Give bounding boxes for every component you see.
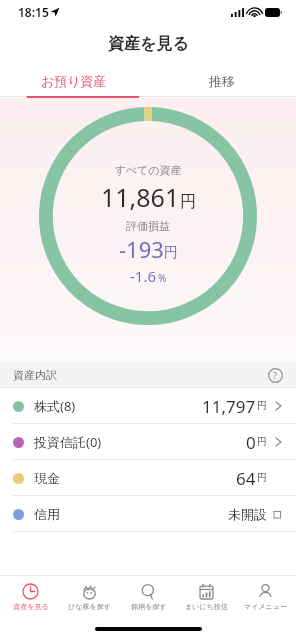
button[interactable]: 資産を見る xyxy=(2,575,59,618)
staticText: 0 xyxy=(246,431,256,454)
staticText: -1.6 xyxy=(130,266,157,286)
staticText: 18:15 xyxy=(18,4,49,20)
staticText: 資産を見る xyxy=(13,602,49,611)
button[interactable]: 信用 xyxy=(0,496,296,532)
staticText: 64 xyxy=(236,467,256,490)
staticText: 未開設 xyxy=(228,506,267,522)
button[interactable]: マイメニュー xyxy=(237,575,294,618)
staticText: -193 xyxy=(119,234,164,264)
staticText: 円 xyxy=(257,435,267,448)
button[interactable]: まいにち投信 xyxy=(178,575,235,618)
button[interactable]: ヘルプ xyxy=(264,364,286,386)
staticText: 円 xyxy=(257,399,267,412)
staticText: 円 xyxy=(257,471,267,484)
button[interactable]: お預り資産 xyxy=(0,64,148,98)
staticText: 投資信託(0) xyxy=(34,433,102,451)
staticText: 11,797 xyxy=(202,395,256,418)
staticText: 11,861 xyxy=(101,180,180,214)
button[interactable]: 株式(8) xyxy=(0,388,296,424)
staticText: 円 xyxy=(180,192,196,212)
staticText: 現金 xyxy=(34,470,60,486)
button[interactable]: 現金 xyxy=(0,460,296,496)
staticText: ひな株を探す xyxy=(68,602,111,611)
staticText: 株式(8) xyxy=(34,397,76,415)
staticText: 資産を見る xyxy=(108,34,189,54)
staticText: 推移 xyxy=(209,73,235,89)
staticText: 信用 xyxy=(34,506,60,522)
staticText: すべての資産 xyxy=(114,163,182,177)
button[interactable]: ひな株を探す xyxy=(61,575,118,618)
staticText: 評価損益 xyxy=(126,219,170,233)
staticText: % xyxy=(158,271,167,285)
staticText: ? xyxy=(273,369,277,381)
staticText: マイメニュー xyxy=(244,602,287,611)
staticText: お預り資産 xyxy=(41,73,107,89)
staticText: 資産内訳 xyxy=(13,368,57,382)
button[interactable]: 投資信託(0) xyxy=(0,424,296,460)
button[interactable]: 銘柄を探す xyxy=(120,575,177,618)
staticText: 円 xyxy=(164,244,178,262)
button[interactable]: 推移 xyxy=(148,64,296,98)
staticText: まいにち投信 xyxy=(185,602,228,611)
staticText: 銘柄を探す xyxy=(131,602,167,611)
